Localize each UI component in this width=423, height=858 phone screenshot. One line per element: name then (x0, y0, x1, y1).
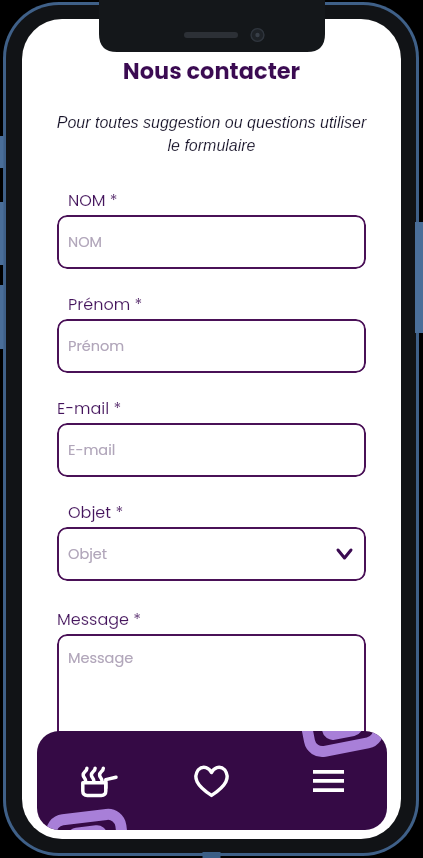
staticText: E-mail * (57, 397, 122, 419)
button[interactable]: Objet (57, 527, 366, 581)
button[interactable]: Menu (270, 731, 387, 830)
staticText: Nous contacter (22, 55, 401, 86)
staticText: Message * (57, 608, 142, 630)
staticText: E-mail (68, 440, 116, 460)
staticText: Prénom (68, 336, 125, 356)
button[interactable]: Favorites (153, 731, 270, 830)
button[interactable]: Recipes (37, 731, 153, 830)
button[interactable]: Prénom (57, 319, 366, 373)
staticText: Pour toutes suggestion ou questions util… (53, 114, 370, 155)
staticText: Message (68, 648, 134, 668)
staticText: NOM * (68, 189, 118, 211)
staticText: Prénom * (68, 293, 143, 315)
button[interactable]: NOM (57, 215, 366, 269)
staticText: Objet (68, 544, 108, 564)
button[interactable]: Message (57, 634, 366, 784)
staticText: Objet * (68, 501, 124, 523)
button[interactable]: E-mail (57, 423, 366, 477)
staticText: NOM (68, 232, 103, 252)
